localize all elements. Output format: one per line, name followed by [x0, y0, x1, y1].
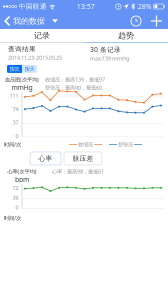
button[interactable]: Add record — [146, 13, 168, 28]
staticText: 时间/次 — [4, 141, 21, 148]
staticText: max:139 mmHg — [90, 55, 129, 62]
staticText: bpm — [15, 175, 29, 184]
staticText: mmHg — [11, 83, 32, 92]
staticText: 2014.11.23-2015.05.25 — [8, 54, 62, 61]
staticText: 心率 — [38, 154, 52, 163]
staticText: 心率：最高98，最低61 — [52, 168, 104, 175]
staticText: 脉压差 — [72, 154, 93, 163]
staticText: 0 — [15, 204, 18, 211]
button[interactable]: Switch data set — [45, 14, 65, 28]
staticText: 中国联通 — [17, 2, 49, 11]
staticText: 收缩压 — [78, 141, 93, 148]
staticText: 28% — [138, 2, 152, 11]
button[interactable]: History — [126, 14, 146, 28]
staticText: 心率(次平均) — [7, 168, 36, 175]
staticText: 74 — [12, 106, 18, 113]
button[interactable]: 记录 — [0, 29, 84, 42]
button[interactable]: 按天 — [22, 65, 37, 73]
staticText: 查询结果 — [8, 45, 36, 53]
staticText: 36 — [12, 194, 18, 201]
button[interactable]: 脉压差 — [64, 152, 102, 165]
staticText: 血压图(次平均) — [5, 76, 39, 83]
staticText: 按天 — [24, 66, 34, 72]
staticText: 记录 — [34, 31, 50, 40]
staticText: 舒张压：最高90，最低60 — [45, 84, 102, 91]
staticText: 时间/次 — [4, 214, 21, 221]
staticText: 72 — [12, 184, 18, 191]
staticText: 舒张压 — [118, 141, 133, 148]
staticText: 趋势 — [118, 31, 134, 40]
staticText: 30 条记录 — [90, 45, 121, 54]
staticText: 按次 — [9, 66, 19, 72]
button[interactable]: 按次 — [7, 65, 22, 73]
button[interactable]: 我的数据 — [0, 13, 45, 29]
button[interactable]: 趋势 — [84, 29, 168, 42]
staticText: 13:57 — [77, 2, 95, 11]
staticText: 收缩压：最高139，最低97 — [45, 76, 105, 83]
staticText: 0 — [15, 132, 18, 139]
button[interactable]: 心率 — [30, 152, 61, 165]
staticText: 37 — [12, 119, 18, 126]
staticText: 111 — [9, 92, 18, 99]
staticText: 我的数据 — [13, 16, 45, 26]
